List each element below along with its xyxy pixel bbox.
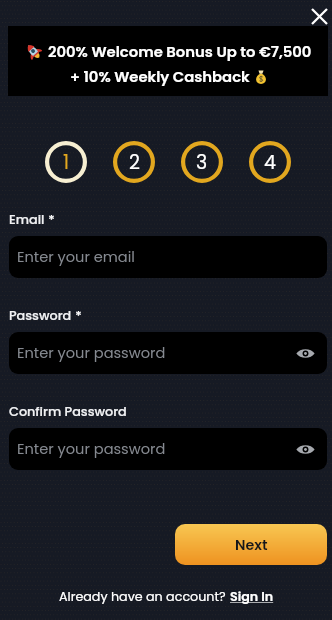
staticText: Confirm Password <box>9 403 127 421</box>
staticText: Enter your email <box>17 247 135 267</box>
staticText: Enter your password <box>17 439 166 459</box>
staticText: Enter your password <box>17 343 166 363</box>
staticText: Password <box>9 307 72 325</box>
button[interactable]: Next <box>175 524 327 565</box>
staticText: 3 <box>196 149 208 176</box>
staticText: + 10% Weekly Cashback <box>70 66 250 87</box>
staticText: Already have an account? <box>59 588 230 606</box>
button[interactable]: Show password <box>293 341 317 365</box>
button[interactable]: 2 <box>113 141 155 183</box>
staticText: * <box>72 307 82 325</box>
staticText: 200% Welcome Bonus Up to €7,500 <box>48 41 312 62</box>
staticText: 4 <box>264 149 276 176</box>
button[interactable]: 3 <box>181 141 223 183</box>
staticText: Sign In <box>230 588 274 606</box>
staticText: * <box>45 211 55 229</box>
button[interactable]: Enter your email <box>9 236 327 278</box>
button[interactable]: Show password <box>293 437 317 461</box>
staticText: Email <box>9 211 45 229</box>
button[interactable]: Sign In <box>230 588 274 606</box>
button[interactable]: 4 <box>249 141 291 183</box>
button[interactable]: Enter your password <box>9 428 327 470</box>
staticText: Next <box>235 535 268 555</box>
staticText: 2 <box>129 149 140 176</box>
button[interactable]: 1 <box>45 141 87 183</box>
button[interactable]: 200% Welcome Bonus Up to €7,500 <box>8 26 328 96</box>
button[interactable]: Close <box>306 3 332 29</box>
staticText: 1 <box>63 149 70 176</box>
button[interactable]: Enter your password <box>9 332 327 374</box>
